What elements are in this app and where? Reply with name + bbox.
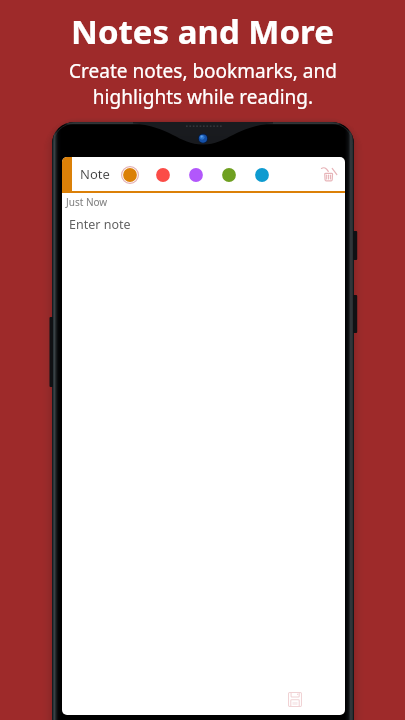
button[interactable] — [245, 164, 278, 184]
staticText: Enter note — [69, 216, 131, 233]
button[interactable] — [113, 164, 146, 184]
button[interactable]: Delete note — [314, 159, 344, 189]
button[interactable] — [179, 164, 212, 184]
button[interactable]: Save note — [279, 683, 311, 715]
staticText: Notes and More — [71, 9, 334, 54]
staticText: Just Now — [66, 195, 108, 209]
staticText: Note — [80, 165, 110, 183]
staticText: Create notes, bookmarks, and highlights … — [69, 58, 337, 109]
button[interactable] — [212, 164, 245, 184]
button[interactable] — [146, 164, 179, 184]
